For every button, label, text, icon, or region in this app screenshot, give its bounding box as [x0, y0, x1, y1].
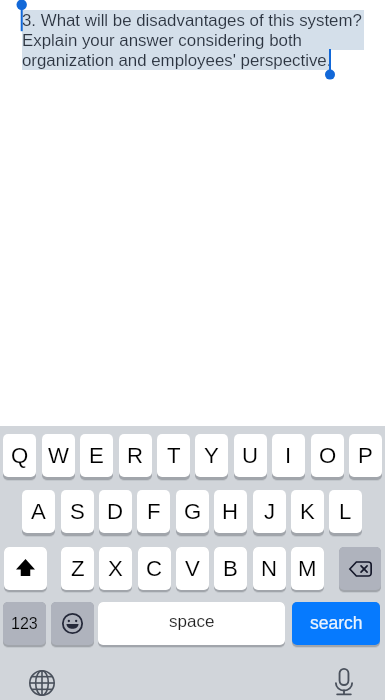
staticText: organization and employees' perspective.	[22, 51, 332, 70]
button[interactable]: O	[311, 434, 344, 477]
staticText: O	[319, 443, 337, 468]
button[interactable]: E	[80, 434, 113, 477]
button[interactable]: Q	[3, 434, 36, 477]
staticText: R	[127, 443, 144, 468]
button[interactable]: W	[42, 434, 75, 477]
button[interactable]: V	[176, 547, 209, 590]
button[interactable]: Emoji	[51, 602, 94, 645]
button[interactable]: G	[176, 490, 209, 533]
staticText: K	[300, 499, 315, 524]
staticText: Explain your answer considering both	[22, 31, 302, 50]
staticText: B	[223, 556, 238, 581]
button[interactable]: T	[157, 434, 190, 477]
button[interactable]: P	[349, 434, 382, 477]
button[interactable]: A	[22, 490, 55, 533]
staticText: H	[222, 499, 239, 524]
button[interactable]: N	[253, 547, 286, 590]
button[interactable]: 123	[3, 602, 46, 645]
staticText: S	[70, 499, 85, 524]
button[interactable]: C	[138, 547, 171, 590]
button[interactable]: search	[292, 602, 380, 645]
button[interactable]: Dictate	[330, 664, 357, 699]
staticText: 123	[11, 615, 38, 633]
button[interactable]: Y	[195, 434, 228, 477]
staticText: space	[169, 612, 215, 631]
button[interactable]: K	[291, 490, 324, 533]
staticText: J	[264, 499, 276, 524]
button[interactable]: U	[234, 434, 267, 477]
button[interactable]: Backspace	[339, 547, 381, 590]
staticText: search	[310, 613, 363, 633]
button[interactable]: R	[119, 434, 152, 477]
staticText: A	[31, 499, 46, 524]
button[interactable]: Change keyboard	[25, 666, 59, 700]
staticText: D	[107, 499, 124, 524]
staticText: L	[339, 499, 352, 524]
staticText: M	[298, 556, 317, 581]
staticText: P	[358, 443, 373, 468]
button[interactable]: I	[272, 434, 305, 477]
button[interactable]: space	[98, 602, 285, 645]
button[interactable]: L	[329, 490, 362, 533]
staticText: Z	[71, 556, 85, 581]
staticText: F	[147, 499, 161, 524]
staticText: U	[242, 443, 259, 468]
button[interactable]: J	[253, 490, 286, 533]
staticText: I	[285, 443, 292, 468]
button[interactable]: D	[99, 490, 132, 533]
button[interactable]: H	[214, 490, 247, 533]
button[interactable]: F	[137, 490, 170, 533]
staticText: C	[146, 556, 163, 581]
staticText: E	[89, 443, 104, 468]
staticText: X	[108, 556, 123, 581]
staticText: N	[261, 556, 278, 581]
staticText: T	[167, 443, 181, 468]
button[interactable]: M	[291, 547, 324, 590]
staticText: G	[184, 499, 202, 524]
button[interactable]: Shift	[4, 547, 47, 590]
button[interactable]: X	[99, 547, 132, 590]
button[interactable]: Z	[61, 547, 94, 590]
staticText: 3. What will be disadvantages of this sy…	[22, 11, 362, 30]
staticText: Y	[204, 443, 219, 468]
button[interactable]: B	[214, 547, 247, 590]
button[interactable]: S	[61, 490, 94, 533]
staticText: W	[48, 443, 69, 468]
staticText: Q	[11, 443, 29, 468]
staticText: V	[185, 556, 200, 581]
